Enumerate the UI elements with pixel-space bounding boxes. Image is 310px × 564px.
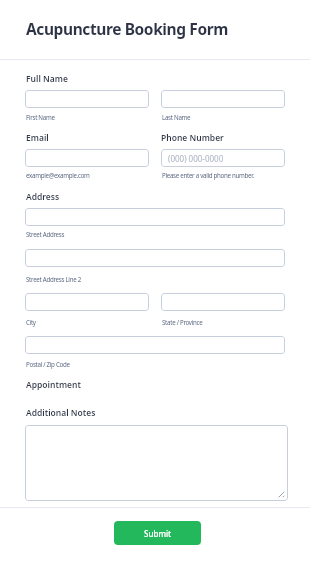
staticText: Please enter a valid phone number. xyxy=(162,171,254,179)
staticText: (000) 000-0000 xyxy=(168,153,224,164)
button[interactable] xyxy=(25,90,149,108)
staticText: State / Province xyxy=(162,318,203,326)
staticText: Last Name xyxy=(162,113,191,121)
staticText: Street Address xyxy=(26,230,65,238)
button[interactable] xyxy=(25,249,285,267)
staticText: example@example.com xyxy=(26,171,90,179)
staticText: Address xyxy=(26,191,60,203)
button[interactable]: Submit xyxy=(114,521,201,545)
staticText: Additional Notes xyxy=(26,407,96,419)
staticText: Full Name xyxy=(26,73,68,85)
button[interactable] xyxy=(25,425,288,501)
button[interactable] xyxy=(25,208,285,226)
staticText: Appointment xyxy=(26,379,81,391)
staticText: Acupuncture Booking Form xyxy=(26,18,228,39)
button[interactable]: (000) 000-0000 xyxy=(161,149,285,167)
button[interactable] xyxy=(25,149,149,167)
staticText: Street Address Line 2 xyxy=(26,275,81,283)
staticText: Submit xyxy=(144,528,172,539)
button[interactable] xyxy=(161,293,285,311)
staticText: Phone Number xyxy=(161,132,224,144)
button[interactable] xyxy=(25,336,285,354)
button[interactable] xyxy=(25,293,149,311)
staticText: Postal / Zip Code xyxy=(26,360,70,368)
staticText: First Name xyxy=(26,113,55,121)
staticText: City xyxy=(26,318,36,326)
button[interactable] xyxy=(161,90,285,108)
staticText: Email xyxy=(26,132,49,144)
